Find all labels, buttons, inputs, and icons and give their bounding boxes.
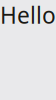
staticText: Hello	[0, 0, 56, 30]
